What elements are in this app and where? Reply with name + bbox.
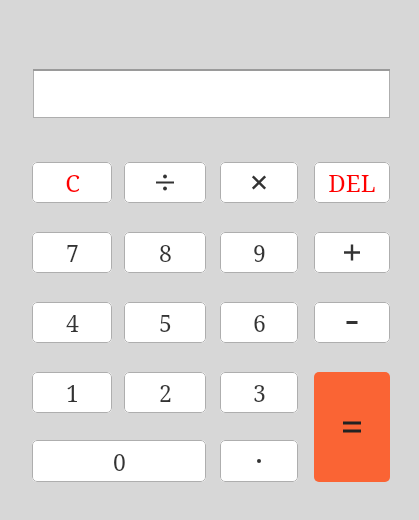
staticText: DEL bbox=[328, 166, 376, 199]
staticText: 5 bbox=[159, 307, 172, 338]
button[interactable]: 8 bbox=[124, 232, 206, 273]
button[interactable]: 2 bbox=[124, 372, 206, 413]
button[interactable]: Decimal point bbox=[220, 440, 298, 482]
button[interactable] bbox=[33, 70, 390, 118]
button[interactable]: C bbox=[32, 162, 112, 203]
staticText: 1 bbox=[66, 377, 79, 408]
staticText: 7 bbox=[66, 237, 79, 268]
button[interactable]: DEL bbox=[314, 162, 390, 203]
button[interactable]: 5 bbox=[124, 302, 206, 343]
staticText: 0 bbox=[113, 446, 126, 477]
button[interactable]: Multiply bbox=[220, 162, 298, 203]
button[interactable]: Divide bbox=[124, 162, 206, 203]
button[interactable]: Plus bbox=[314, 232, 390, 273]
staticText: 6 bbox=[253, 307, 266, 338]
staticText: 8 bbox=[159, 237, 172, 268]
staticText: 2 bbox=[159, 377, 172, 408]
button[interactable]: 7 bbox=[32, 232, 112, 273]
button[interactable]: Minus bbox=[314, 302, 390, 343]
button[interactable]: 3 bbox=[220, 372, 298, 413]
staticText: C bbox=[65, 166, 80, 199]
button[interactable]: 9 bbox=[220, 232, 298, 273]
staticText: 9 bbox=[253, 237, 266, 268]
button[interactable]: 0 bbox=[32, 440, 206, 482]
staticText: 4 bbox=[66, 307, 79, 338]
button[interactable]: 1 bbox=[32, 372, 112, 413]
button[interactable]: Equals bbox=[314, 372, 390, 482]
staticText: 3 bbox=[253, 377, 266, 408]
button[interactable]: 6 bbox=[220, 302, 298, 343]
button[interactable]: 4 bbox=[32, 302, 112, 343]
